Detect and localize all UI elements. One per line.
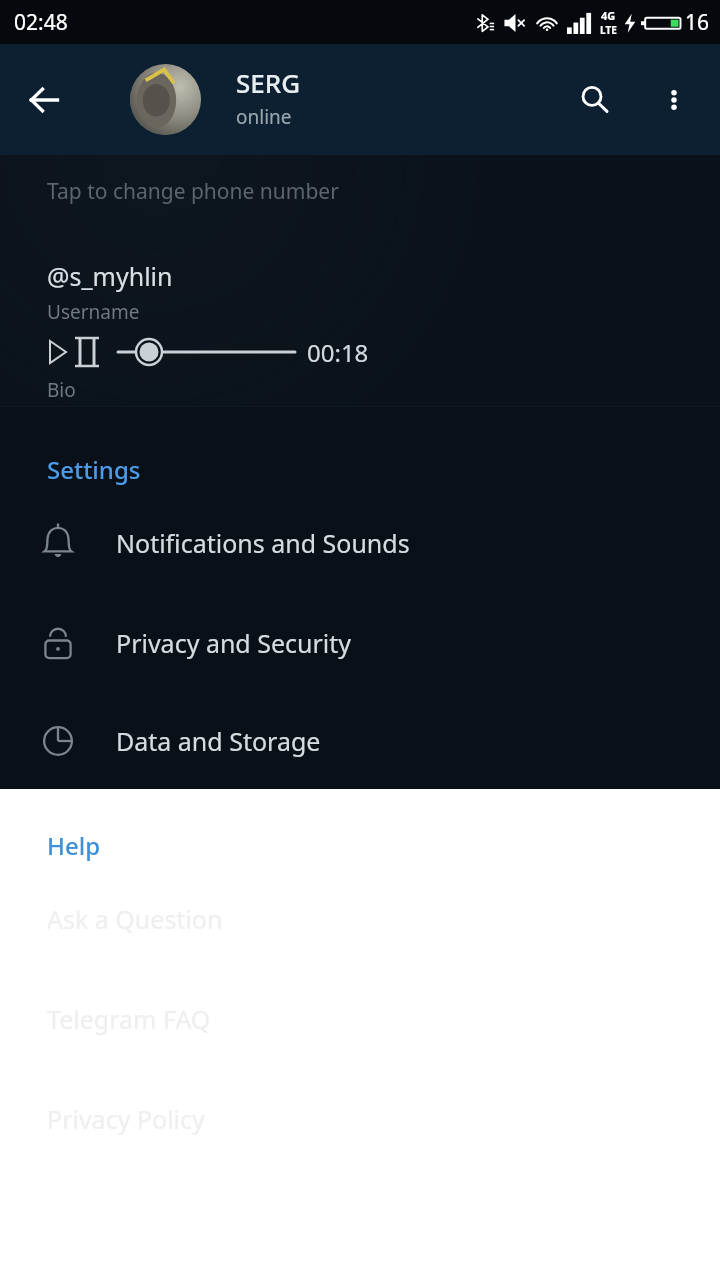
staticText: 02:48 [14, 8, 68, 37]
staticText: Data and Storage [116, 724, 321, 758]
button[interactable]: Profile photo [130, 64, 201, 135]
button[interactable]: @s_myhlin [0, 255, 720, 335]
staticText: Ask a Question [47, 902, 223, 936]
button[interactable]: Data and Storage [0, 693, 720, 789]
staticText: 16 [685, 8, 710, 37]
staticText: Bio [47, 377, 76, 403]
staticText: 00:18 [307, 336, 369, 369]
staticText: Privacy and Security [116, 626, 352, 660]
staticText: Username [47, 299, 140, 325]
staticText: Telegram FAQ [47, 1002, 211, 1036]
staticText: online [236, 104, 292, 130]
staticText: Privacy Policy [47, 1102, 205, 1136]
button[interactable]: More options [649, 75, 699, 125]
staticText: 4G [601, 8, 616, 23]
staticText: Notifications and Sounds [116, 526, 410, 560]
staticText: ЅERG [236, 65, 301, 100]
button[interactable]: Privacy and Security [0, 593, 720, 693]
staticText: Tap to change phone number [47, 177, 339, 206]
staticText: LTE [600, 23, 617, 37]
button[interactable]: Search [567, 72, 623, 128]
staticText: Settings [47, 453, 141, 486]
button[interactable]: Tap to change phone number [0, 155, 720, 227]
button[interactable]: Back [16, 72, 72, 128]
button[interactable]: Notifications and Sounds [0, 493, 720, 593]
button[interactable]: Voice bio player [0, 328, 720, 376]
staticText: Help [47, 829, 101, 862]
staticText: @s_myhlin [47, 259, 173, 293]
